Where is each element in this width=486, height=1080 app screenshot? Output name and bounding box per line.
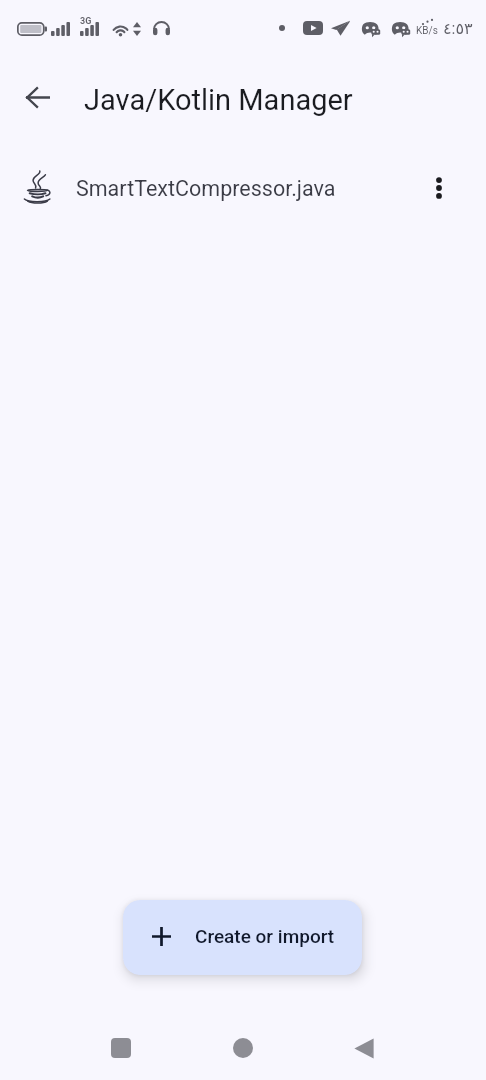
button[interactable]: Back: [336, 1020, 392, 1076]
button[interactable]: More options: [417, 166, 461, 210]
staticText: SmartTextCompressor.java: [76, 176, 336, 201]
staticText: Java/Kotlin Manager: [84, 83, 353, 117]
button[interactable]: Recents: [93, 1020, 149, 1076]
button[interactable]: Home: [215, 1020, 271, 1076]
staticText: KB/s: [416, 25, 438, 37]
button[interactable]: Back: [14, 73, 62, 121]
button[interactable]: Create or import: [123, 900, 362, 975]
staticText: ٤:٥٣: [443, 19, 473, 38]
button[interactable]: SmartTextCompressor.java: [0, 140, 486, 244]
staticText: 3G: [80, 16, 92, 27]
staticText: Create or import: [195, 925, 335, 947]
